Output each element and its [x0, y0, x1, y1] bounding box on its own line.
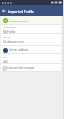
staticText: Connect after import: [7, 66, 35, 70]
staticText: Identity: [3, 36, 11, 39]
button[interactable]: Connect after import: [3, 64, 61, 72]
button[interactable]: Identity: [3, 36, 61, 46]
button[interactable]: Navigate up: [0, 5, 7, 16]
staticText: 443: [3, 60, 8, 64]
button[interactable]: Server address: [3, 46, 61, 54]
staticText: Profile imported: [9, 19, 28, 22]
staticText: Port: [3, 56, 8, 59]
button[interactable]: Profile name: [3, 25, 61, 34]
button[interactable]: Port: [3, 56, 61, 64]
staticText: Profile name: [3, 26, 17, 29]
staticText: MyProfile: [3, 30, 16, 34]
staticText: Server address: [9, 48, 29, 52]
staticText: Imported Profile: [8, 9, 34, 13]
staticText: h2.domain.com: [3, 40, 24, 44]
